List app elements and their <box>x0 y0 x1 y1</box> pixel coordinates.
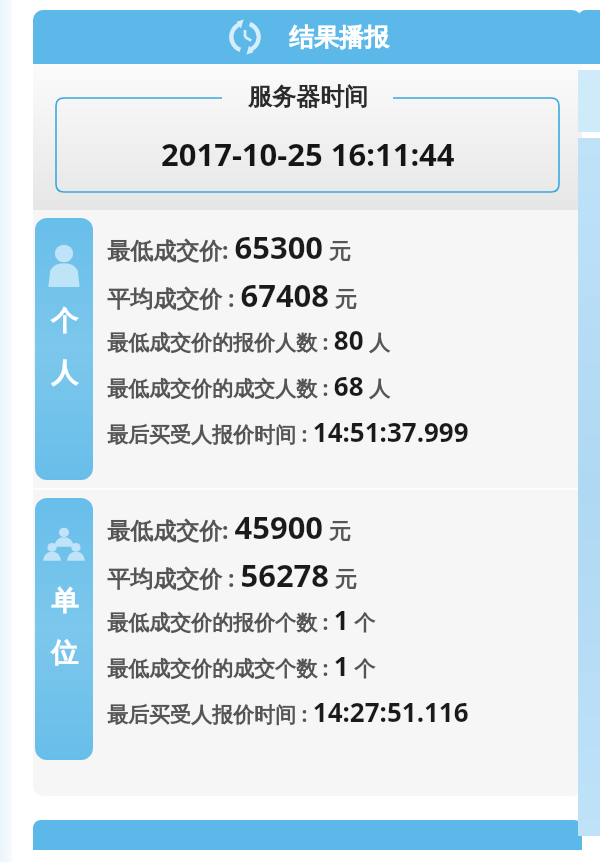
button[interactable]: 个人 <box>33 210 582 488</box>
staticText: 服务器时间 <box>248 82 368 112</box>
staticText: 单 <box>51 584 78 618</box>
staticText: 最低成交价: 45900 元 <box>107 506 351 554</box>
staticText: 结果播报 <box>289 22 389 53</box>
staticText: 最后买受人报价时间 : 14:27:51.116 <box>107 694 469 740</box>
staticText: 位 <box>51 636 78 670</box>
staticText: 平均成交价 : 67408 元 <box>107 274 357 322</box>
staticText: 个 <box>51 304 78 338</box>
other: Refresh <box>227 19 263 55</box>
staticText: 最低成交价: 65300 元 <box>107 226 351 274</box>
staticText: 最低成交价的成交人数 : 68 人 <box>107 368 391 414</box>
staticText: 2017-10-25 16:11:44 <box>161 133 455 175</box>
staticText: 人 <box>51 356 78 390</box>
staticText: 最低成交价的报价人数 : 80 人 <box>107 322 391 368</box>
staticText: 最低成交价的报价个数 : 1 个 <box>107 602 376 648</box>
other: 个人 <box>35 218 93 480</box>
staticText: 平均成交价 : 56278 元 <box>107 554 357 602</box>
button[interactable]: 单位 <box>33 490 582 768</box>
staticText: 最后买受人报价时间 : 14:51:37.999 <box>107 414 469 460</box>
other: 单位 <box>35 498 93 760</box>
button[interactable]: Refresh <box>33 10 582 64</box>
staticText: 最低成交价的成交个数 : 1 个 <box>107 648 376 694</box>
